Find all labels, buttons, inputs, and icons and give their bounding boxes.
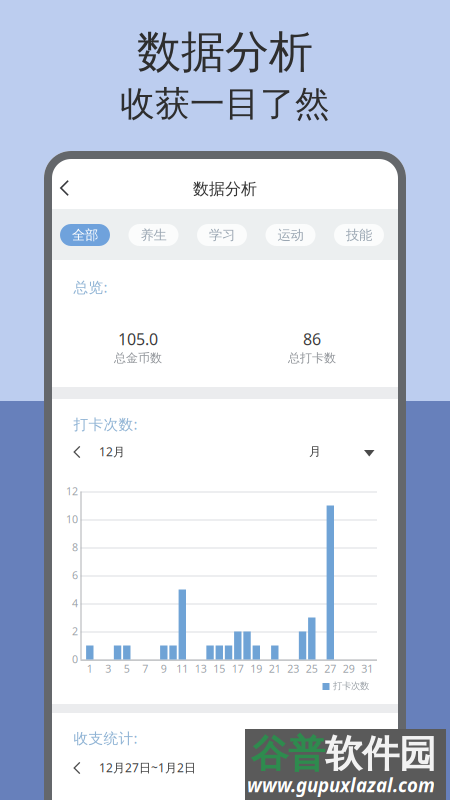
staticText: 12月27日~1月2日 xyxy=(99,759,196,775)
staticText: 1 xyxy=(87,661,93,676)
staticText: 收支统计: xyxy=(73,728,137,748)
staticText: 15 xyxy=(213,661,225,676)
staticText: 养生 xyxy=(140,227,166,243)
staticText: 7 xyxy=(142,661,148,676)
staticText: 10 xyxy=(66,512,78,526)
staticText: 12月 xyxy=(99,443,125,459)
button[interactable]: 技能 xyxy=(334,224,384,246)
button[interactable]: 学习 xyxy=(197,224,247,246)
button[interactable]: 运动 xyxy=(265,224,315,246)
staticText: 9 xyxy=(161,661,167,676)
staticText: 11 xyxy=(176,661,188,676)
staticText: 总打卡数 xyxy=(288,351,336,365)
staticText: 12 xyxy=(66,484,78,498)
staticText: 总金币数 xyxy=(114,351,162,365)
staticText: 全部 xyxy=(72,227,98,243)
button[interactable]: 全部 xyxy=(60,224,110,246)
button[interactable]: Previous month xyxy=(70,445,84,459)
staticText: 5 xyxy=(124,661,130,676)
staticText: 总览: xyxy=(73,277,107,297)
button[interactable]: Change period xyxy=(364,450,376,458)
staticText: 数据分析 xyxy=(137,25,313,79)
staticText: 收获一目了然 xyxy=(120,83,330,125)
staticText: 软件园 xyxy=(325,731,436,777)
staticText: 打卡次数: xyxy=(73,414,137,434)
staticText: 25 xyxy=(306,661,318,676)
staticText: 技能 xyxy=(346,227,372,243)
staticText: 数据分析 xyxy=(193,179,257,199)
button[interactable]: 养生 xyxy=(128,224,178,246)
staticText: 打卡次数 xyxy=(333,680,369,692)
staticText: 13 xyxy=(195,661,207,676)
staticText: 31 xyxy=(361,661,373,676)
button[interactable]: Previous week xyxy=(70,761,84,775)
staticText: 0 xyxy=(72,652,78,666)
staticText: 19 xyxy=(250,661,262,676)
staticText: 6 xyxy=(72,568,78,582)
staticText: 4 xyxy=(72,596,78,610)
staticText: 谷普 xyxy=(251,731,325,777)
staticText: 2 xyxy=(72,624,78,638)
staticText: 21 xyxy=(269,661,281,676)
button[interactable]: Back xyxy=(47,170,81,206)
staticText: 86 xyxy=(303,328,321,350)
staticText: 105.0 xyxy=(118,328,158,350)
staticText: 学习 xyxy=(209,227,235,243)
staticText: 17 xyxy=(232,661,244,676)
staticText: 3 xyxy=(105,661,111,676)
staticText: 29 xyxy=(343,661,355,676)
staticText: 23 xyxy=(287,661,299,676)
staticText: 运动 xyxy=(277,227,303,243)
staticText: 月 xyxy=(309,444,321,459)
staticText: www.gupuxlazal.com xyxy=(247,773,435,797)
staticText: 8 xyxy=(72,540,78,554)
staticText: 27 xyxy=(324,661,336,676)
